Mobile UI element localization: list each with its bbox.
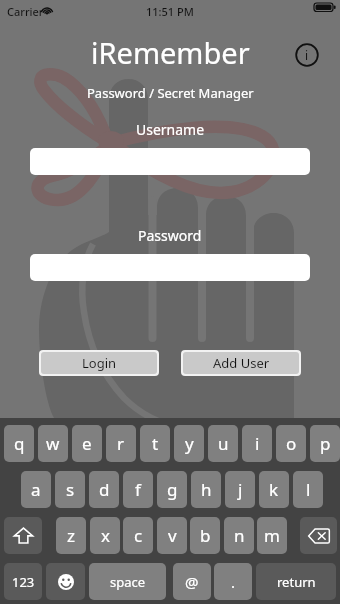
staticText: . xyxy=(231,572,236,592)
button[interactable]: j xyxy=(225,471,255,508)
staticText: k xyxy=(269,478,279,501)
staticText: a xyxy=(31,478,41,501)
button[interactable]: d xyxy=(89,471,119,508)
staticText: p xyxy=(320,432,331,455)
staticText: Password / Secret Manager xyxy=(87,84,254,102)
staticText: space xyxy=(110,573,146,591)
button[interactable]: o xyxy=(276,425,306,462)
staticText: g xyxy=(167,478,178,501)
button[interactable]: u xyxy=(208,425,238,462)
staticText: @ xyxy=(185,572,199,592)
button[interactable]: return xyxy=(256,563,336,600)
button[interactable]: l xyxy=(293,471,323,508)
button[interactable]: c xyxy=(123,517,153,554)
staticText: l xyxy=(306,478,311,501)
button[interactable]: n xyxy=(224,517,254,554)
button[interactable]: Add User xyxy=(183,352,299,374)
button[interactable]: i xyxy=(242,425,272,462)
button[interactable]: h xyxy=(191,471,221,508)
button[interactable]: b xyxy=(190,517,220,554)
staticText: u xyxy=(218,432,229,455)
staticText: q xyxy=(14,432,25,455)
button[interactable]: Login xyxy=(41,352,157,374)
button[interactable]: r xyxy=(106,425,136,462)
staticText: i xyxy=(255,432,260,455)
button[interactable]: s xyxy=(55,471,85,508)
button[interactable]: e xyxy=(72,425,102,462)
staticText: b xyxy=(200,524,211,547)
button[interactable]: f xyxy=(123,471,153,508)
button[interactable]: g xyxy=(157,471,187,508)
staticText: z xyxy=(67,524,75,547)
staticText: h xyxy=(201,478,212,501)
button[interactable] xyxy=(30,148,310,175)
staticText: y xyxy=(185,432,194,455)
staticText: n xyxy=(234,524,245,547)
staticText: Username xyxy=(136,120,205,139)
button[interactable]: a xyxy=(21,471,51,508)
button[interactable]: Shift xyxy=(4,517,42,554)
button[interactable]: 123 xyxy=(4,563,42,600)
button[interactable]: space xyxy=(89,563,166,600)
button[interactable] xyxy=(30,254,310,281)
button[interactable]: x xyxy=(90,517,120,554)
staticText: r xyxy=(117,432,125,455)
button[interactable]: k xyxy=(259,471,289,508)
button[interactable]: w xyxy=(38,425,68,462)
button[interactable]: y xyxy=(174,425,204,462)
button[interactable]: p xyxy=(310,425,340,462)
staticText: s xyxy=(66,478,75,501)
button[interactable]: t xyxy=(140,425,170,462)
staticText: w xyxy=(46,432,60,455)
staticText: Carrier xyxy=(7,4,44,19)
staticText: m xyxy=(264,524,280,547)
staticText: d xyxy=(99,478,110,501)
staticText: e xyxy=(82,432,92,455)
staticText: f xyxy=(135,478,141,501)
button[interactable]: m xyxy=(257,517,287,554)
button[interactable]: z xyxy=(56,517,86,554)
button[interactable]: Info xyxy=(295,43,319,67)
staticText: o xyxy=(286,432,297,455)
staticText: 123 xyxy=(12,573,35,591)
button[interactable]: Backspace xyxy=(300,517,337,554)
staticText: 11:51 PM xyxy=(146,4,194,19)
button[interactable]: q xyxy=(4,425,34,462)
button[interactable]: Emoji xyxy=(46,563,85,600)
staticText: Add User xyxy=(213,354,270,372)
button[interactable]: . xyxy=(214,563,252,600)
staticText: v xyxy=(168,524,177,547)
button[interactable]: @ xyxy=(173,563,211,600)
button[interactable]: v xyxy=(157,517,187,554)
staticText: t xyxy=(152,432,159,455)
staticText: i xyxy=(305,47,309,63)
staticText: return xyxy=(277,573,316,591)
staticText: j xyxy=(238,478,243,501)
staticText: iRemember xyxy=(91,33,250,72)
staticText: x xyxy=(101,524,110,547)
staticText: Password xyxy=(138,226,202,245)
staticText: Login xyxy=(82,354,117,372)
staticText: c xyxy=(134,524,143,547)
